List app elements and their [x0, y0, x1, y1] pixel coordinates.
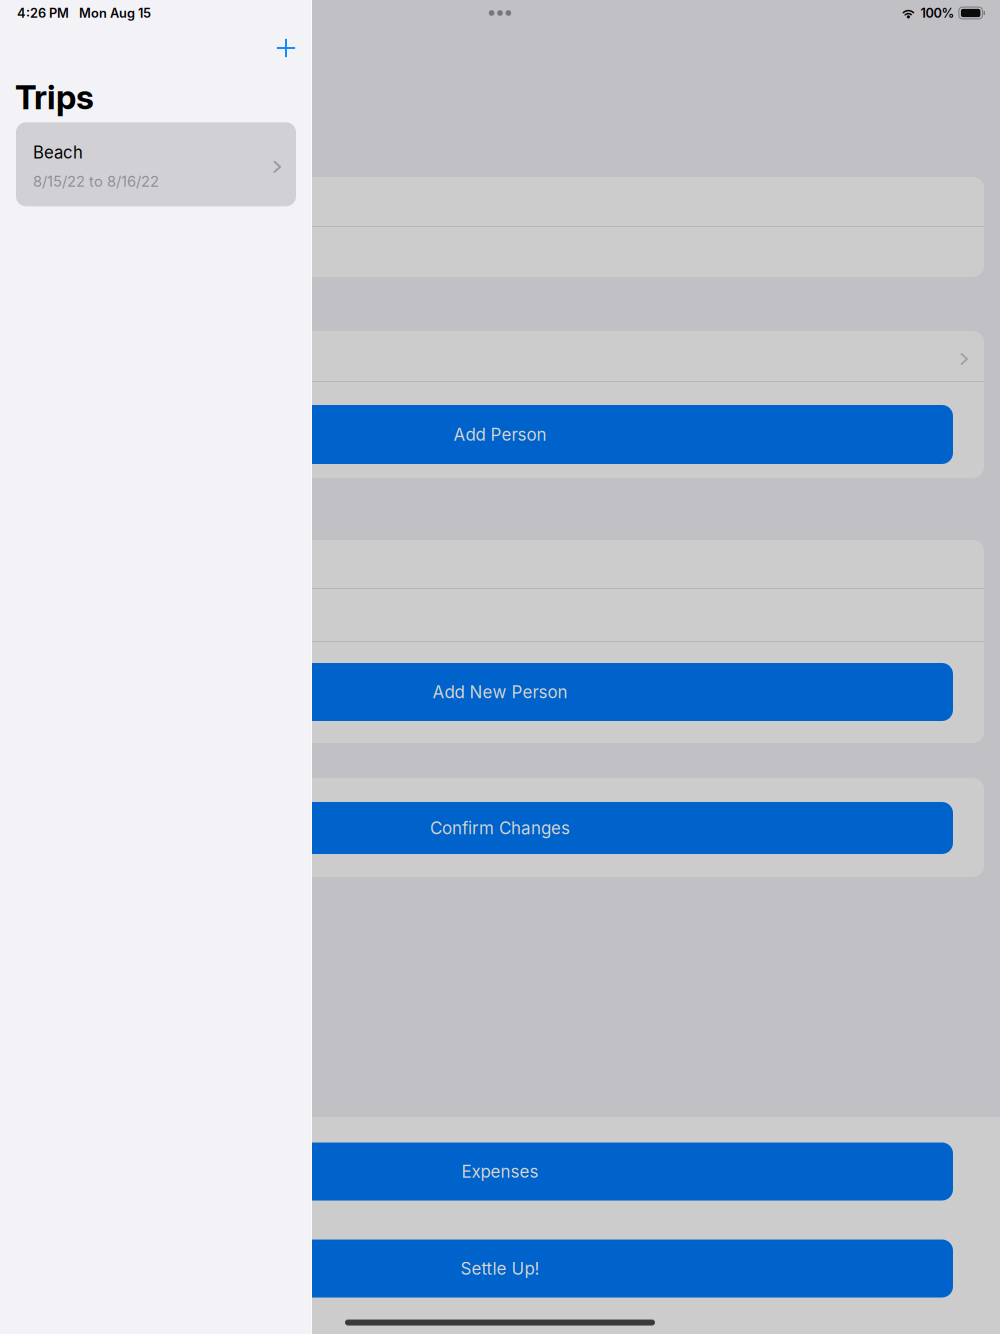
staticText: 100%	[920, 5, 954, 21]
staticText: 4:26 PM	[17, 5, 69, 21]
button[interactable]: Add Person	[47, 405, 953, 464]
staticText: Trips	[15, 77, 94, 117]
staticText: Add Person	[453, 424, 546, 445]
staticText: Beach	[33, 142, 83, 162]
button[interactable]: Expenses	[47, 1142, 953, 1200]
button[interactable]: New Trip	[264, 29, 308, 67]
staticText: Expenses	[461, 1161, 538, 1182]
staticText: Confirm Changes	[430, 818, 570, 838]
staticText: Settle Up!	[460, 1258, 539, 1279]
button[interactable]: Settle Up!	[47, 1239, 953, 1297]
staticText: Mon Aug 15	[79, 5, 151, 21]
staticText: Add New Person	[432, 682, 567, 702]
button[interactable]: Confirm Changes	[47, 802, 953, 854]
button[interactable]: Open	[16, 331, 984, 382]
button[interactable]: Add New Person	[47, 663, 953, 721]
button[interactable]: Beach	[16, 122, 296, 206]
staticText: 8/15/22 to 8/16/22	[33, 172, 159, 190]
